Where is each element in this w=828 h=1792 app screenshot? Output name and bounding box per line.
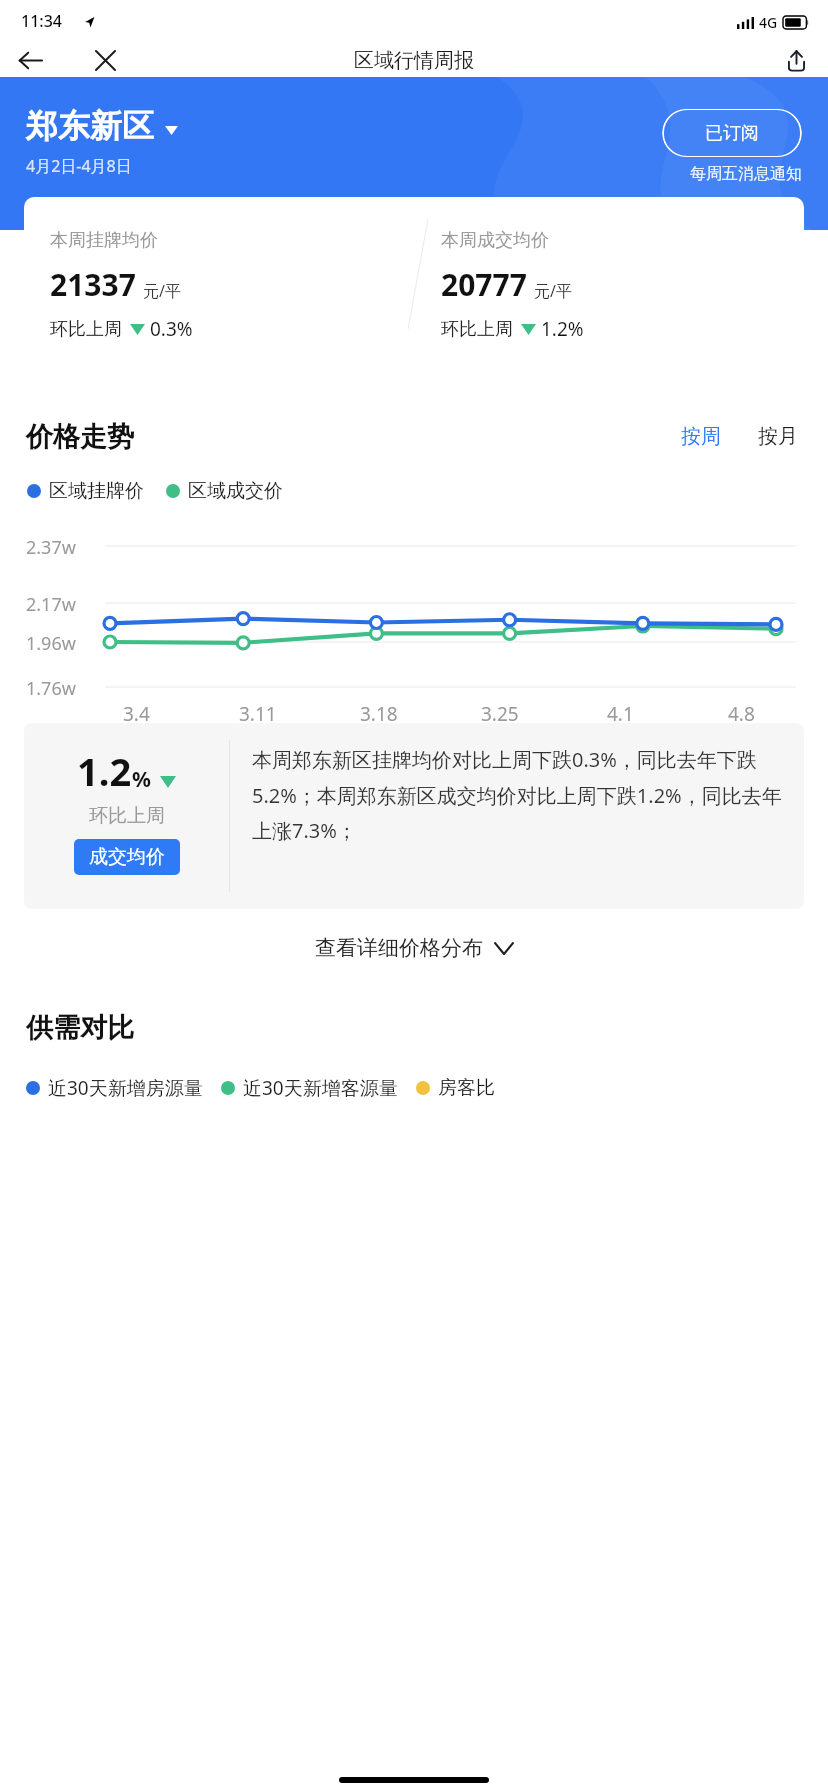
staticText: 价格走势 <box>26 420 134 454</box>
staticText: 4.1 <box>607 701 634 727</box>
staticText: 20777 <box>441 264 527 305</box>
staticText: 元/平 <box>143 280 181 302</box>
staticText: 1.76w <box>26 676 76 701</box>
staticText: 2.17w <box>26 592 76 617</box>
button[interactable]: 按月 <box>754 418 802 455</box>
staticText: 21337 <box>50 264 136 305</box>
staticText: 区域行情周报 <box>354 48 474 73</box>
button[interactable]: 已订阅 <box>662 109 802 157</box>
button[interactable]: 1.2 <box>24 723 804 909</box>
staticText: 已订阅 <box>705 122 759 145</box>
staticText: 3.11 <box>239 701 277 727</box>
button[interactable]: 按周 <box>677 418 725 455</box>
staticText: 11:34 <box>21 10 62 32</box>
staticText: 供需对比 <box>26 1011 134 1045</box>
staticText: 近30天新增房源量 <box>48 1075 203 1101</box>
staticText: 近30天新增客源量 <box>243 1075 398 1101</box>
button[interactable]: 成交均价 <box>74 839 180 875</box>
staticText: 元/平 <box>534 280 572 302</box>
staticText: 1.96w <box>26 631 76 656</box>
staticText: 3.25 <box>481 701 519 727</box>
staticText: 本周郑东新区挂牌均价对比上周下跌0.3%，同比去年下跌5.2%；本周郑东新区成交… <box>252 746 788 844</box>
staticText: 4.8 <box>728 701 755 727</box>
staticText: 每周五消息通知 <box>690 164 802 184</box>
staticText: 查看详细价格分布 <box>315 935 483 961</box>
button[interactable]: Close <box>82 44 128 77</box>
button[interactable]: 郑东新区 <box>26 106 178 146</box>
button[interactable]: Back <box>6 44 54 77</box>
staticText: 环比上周 <box>441 318 513 341</box>
staticText: 房客比 <box>438 1076 495 1100</box>
staticText: 环比上周 <box>50 318 122 341</box>
staticText: 0.3% <box>150 316 193 342</box>
staticText: 3.18 <box>360 701 398 727</box>
staticText: 区域成交价 <box>188 479 283 503</box>
staticText: 区域挂牌价 <box>49 479 144 503</box>
staticText: 环比上周 <box>89 804 165 828</box>
button[interactable]: 查看详细价格分布 <box>303 927 525 969</box>
staticText: 2.37w <box>26 535 76 560</box>
staticText: 郑东新区 <box>26 106 154 146</box>
staticText: 本周挂牌均价 <box>50 229 158 252</box>
staticText: 1.2 <box>77 745 132 797</box>
staticText: 按月 <box>758 424 798 449</box>
staticText: 3.4 <box>123 701 150 727</box>
staticText: 4月2日-4月8日 <box>26 155 132 177</box>
staticText: 按周 <box>681 424 721 449</box>
staticText: 本周成交均价 <box>441 229 549 252</box>
button[interactable]: 本周挂牌均价 <box>24 197 804 345</box>
button[interactable]: Share <box>773 44 819 77</box>
staticText: 成交均价 <box>89 845 165 869</box>
staticText: % <box>132 765 151 794</box>
staticText: 1.2% <box>541 316 584 342</box>
staticText: 4G <box>759 13 778 32</box>
